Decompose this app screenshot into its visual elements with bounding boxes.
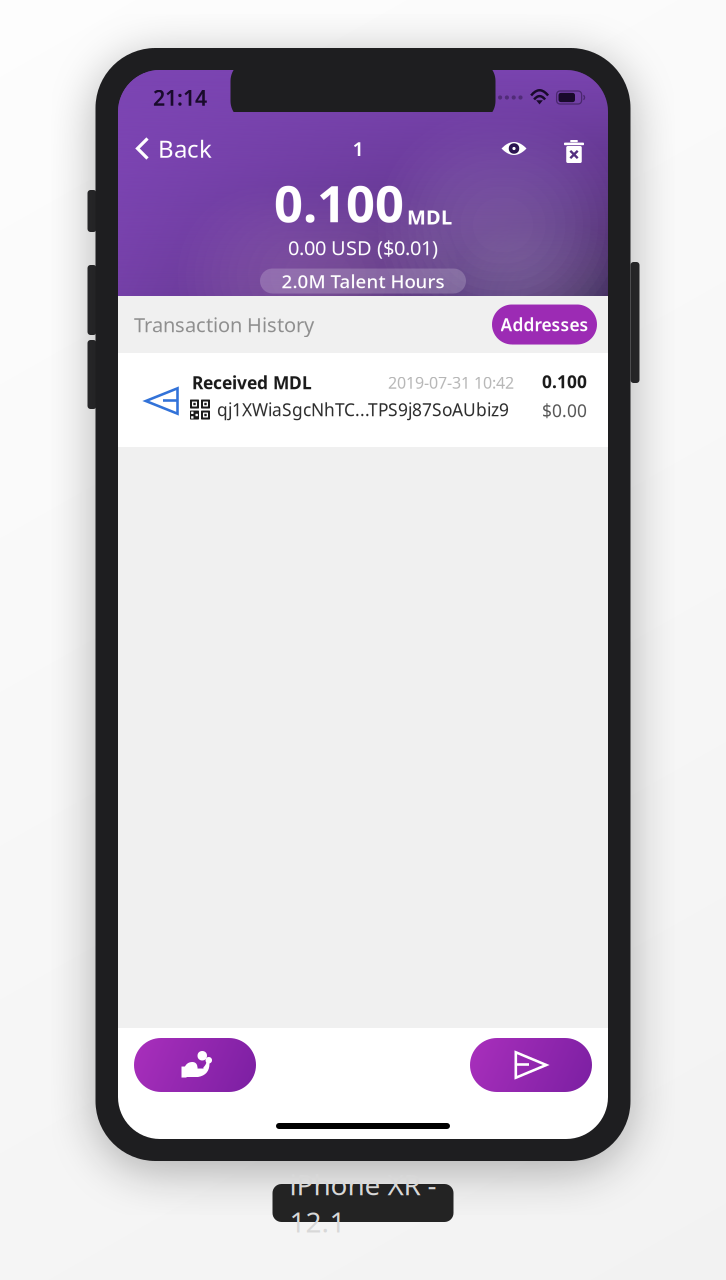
staticText: qj1XWiaSgcNhTC...TPS9j87SoAUbiz9 [217, 398, 509, 421]
staticText: Addresses [500, 313, 588, 336]
button[interactable]: iPhone XR - 12.1 [272, 1184, 453, 1222]
button[interactable]: Back [118, 128, 222, 169]
button[interactable]: Receive [134, 1038, 256, 1092]
staticText: 0.100 [274, 169, 404, 236]
staticText: 21:14 [153, 83, 207, 112]
button[interactable]: Received MDL [118, 353, 608, 447]
staticText: Transaction History [134, 311, 314, 338]
button[interactable]: Show balance [494, 128, 534, 168]
staticText: 1 [352, 135, 363, 162]
staticText: iPhone XR - 12.1 [289, 1166, 436, 1240]
button[interactable]: Addresses [492, 304, 597, 344]
staticText: 2.0M Talent Hours [281, 269, 444, 293]
staticText: MDL [407, 204, 452, 230]
staticText: Received MDL [192, 371, 312, 394]
button[interactable]: Delete wallet [554, 128, 594, 168]
staticText: 2019-07-31 10:42 [388, 372, 514, 393]
staticText: $0.00 [542, 399, 587, 422]
staticText: 0.00 USD ($0.01) [288, 234, 438, 261]
staticText: Back [158, 133, 212, 164]
button[interactable]: Send [470, 1038, 592, 1092]
staticText: 0.100 [542, 370, 587, 393]
